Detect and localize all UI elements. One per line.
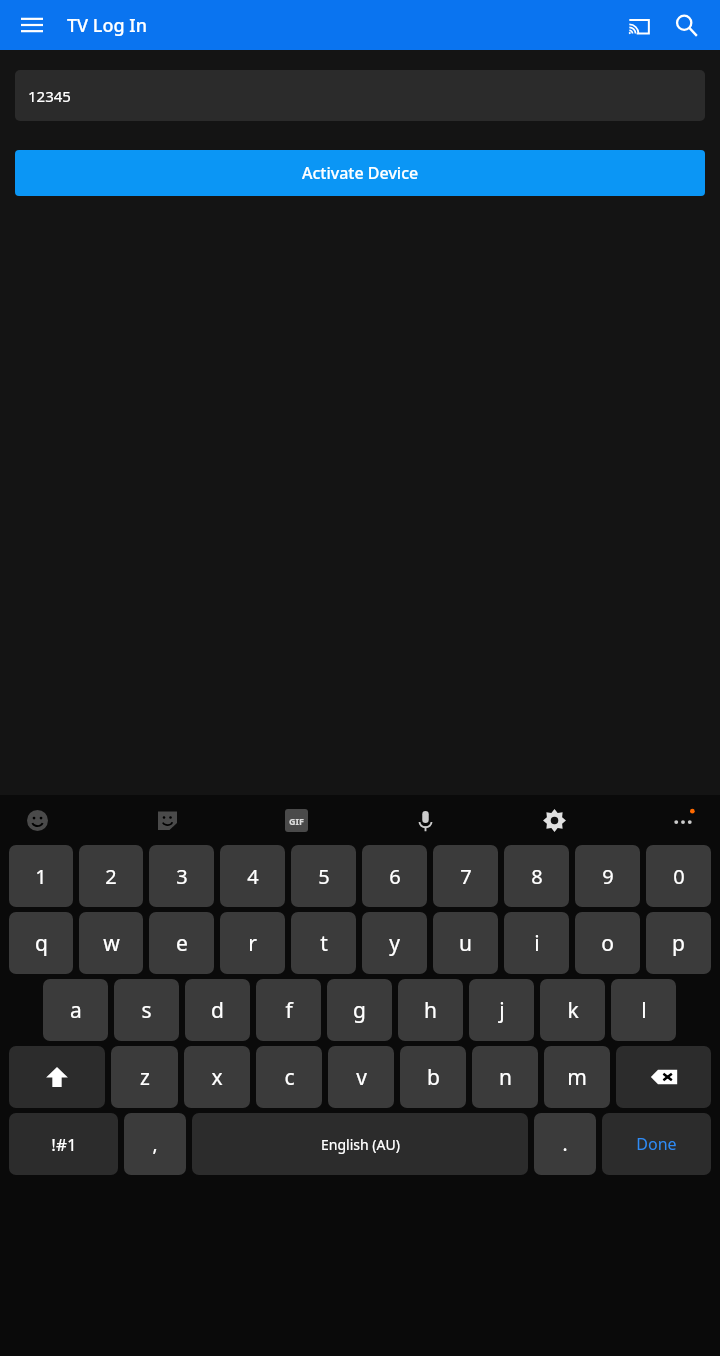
staticText: 8 xyxy=(531,863,543,890)
staticText: Activate Device xyxy=(302,162,419,184)
button[interactable]: u xyxy=(433,912,498,974)
button[interactable]: Emoji xyxy=(20,803,54,837)
staticText: 3 xyxy=(176,863,188,890)
staticText: x xyxy=(211,1063,223,1092)
button[interactable]: x xyxy=(184,1046,250,1108)
staticText: i xyxy=(534,929,540,958)
button[interactable]: !#1 xyxy=(9,1113,118,1175)
staticText: w xyxy=(103,929,120,958)
staticText: s xyxy=(141,996,152,1025)
staticText: a xyxy=(70,996,82,1025)
button[interactable]: l xyxy=(611,979,676,1041)
staticText: u xyxy=(459,929,472,958)
button[interactable]: d xyxy=(185,979,250,1041)
button[interactable]: Backspace xyxy=(616,1046,711,1108)
staticText: 1 xyxy=(35,863,47,890)
button[interactable]: English (AU) xyxy=(192,1113,528,1175)
button[interactable]: Done xyxy=(602,1113,711,1175)
button[interactable]: q xyxy=(9,912,73,974)
button[interactable]: r xyxy=(220,912,285,974)
button[interactable]: 8 xyxy=(504,845,569,907)
staticText: q xyxy=(35,929,48,958)
staticText: . xyxy=(562,1131,568,1157)
button[interactable]: Shift xyxy=(9,1046,105,1108)
button[interactable]: o xyxy=(575,912,640,974)
staticText: v xyxy=(356,1063,367,1092)
button[interactable]: 3 xyxy=(149,845,214,907)
button[interactable]: 2 xyxy=(79,845,143,907)
staticText: y xyxy=(389,929,400,958)
button[interactable]: y xyxy=(362,912,427,974)
button[interactable]: p xyxy=(646,912,711,974)
button[interactable]: GIF xyxy=(279,803,313,837)
staticText: !#1 xyxy=(51,1133,77,1156)
staticText: p xyxy=(672,929,685,958)
button[interactable]: 4 xyxy=(220,845,285,907)
button[interactable]: Settings xyxy=(537,803,571,837)
staticText: TV Log In xyxy=(67,13,147,38)
staticText: n xyxy=(499,1063,512,1092)
button[interactable]: Menu xyxy=(14,7,50,43)
staticText: 0 xyxy=(673,863,685,890)
staticText: b xyxy=(427,1063,440,1092)
staticText: GIF xyxy=(289,815,304,827)
button[interactable]: h xyxy=(398,979,463,1041)
button[interactable]: m xyxy=(544,1046,610,1108)
button[interactable]: 1 xyxy=(9,845,73,907)
button[interactable]: i xyxy=(504,912,569,974)
button[interactable]: . xyxy=(534,1113,596,1175)
button[interactable]: Stickers xyxy=(150,803,184,837)
button[interactable]: t xyxy=(291,912,356,974)
button[interactable]: f xyxy=(256,979,321,1041)
staticText: 9 xyxy=(602,863,614,890)
staticText: k xyxy=(567,996,579,1025)
staticText: 12345 xyxy=(28,86,71,106)
staticText: English (AU) xyxy=(321,1135,400,1154)
staticText: h xyxy=(424,996,437,1025)
button[interactable]: v xyxy=(328,1046,394,1108)
button[interactable]: k xyxy=(540,979,605,1041)
staticText: 2 xyxy=(105,863,117,890)
staticText: , xyxy=(152,1131,158,1157)
staticText: 5 xyxy=(318,863,330,890)
staticText: d xyxy=(211,996,224,1025)
button[interactable]: e xyxy=(149,912,214,974)
button[interactable]: 5 xyxy=(291,845,356,907)
button[interactable]: 7 xyxy=(433,845,498,907)
staticText: g xyxy=(353,996,366,1025)
staticText: c xyxy=(284,1063,295,1092)
button[interactable]: 9 xyxy=(575,845,640,907)
button[interactable]: a xyxy=(43,979,108,1041)
button[interactable]: n xyxy=(472,1046,538,1108)
staticText: Done xyxy=(636,1133,677,1155)
staticText: f xyxy=(285,996,293,1025)
button[interactable]: Activate Device xyxy=(15,150,705,196)
button[interactable]: w xyxy=(79,912,143,974)
button[interactable]: More options xyxy=(666,803,700,837)
button[interactable]: j xyxy=(469,979,534,1041)
staticText: t xyxy=(320,929,328,958)
staticText: l xyxy=(641,996,647,1025)
button[interactable]: z xyxy=(111,1046,178,1108)
staticText: r xyxy=(248,929,257,958)
staticText: 6 xyxy=(389,863,401,890)
button[interactable]: g xyxy=(327,979,392,1041)
staticText: j xyxy=(499,996,505,1025)
staticText: 4 xyxy=(247,863,259,890)
staticText: m xyxy=(567,1063,587,1092)
button[interactable]: , xyxy=(124,1113,186,1175)
staticText: e xyxy=(176,929,188,958)
button[interactable]: c xyxy=(256,1046,322,1108)
button[interactable]: 6 xyxy=(362,845,427,907)
button[interactable]: Voice input xyxy=(408,803,442,837)
button[interactable]: 12345 xyxy=(15,70,705,121)
button[interactable]: Search xyxy=(666,5,706,45)
staticText: o xyxy=(601,929,614,958)
button[interactable]: s xyxy=(114,979,179,1041)
staticText: 7 xyxy=(460,863,472,890)
button[interactable]: b xyxy=(400,1046,466,1108)
button[interactable]: Cast xyxy=(618,5,658,45)
button[interactable]: 0 xyxy=(646,845,711,907)
staticText: z xyxy=(140,1063,150,1092)
